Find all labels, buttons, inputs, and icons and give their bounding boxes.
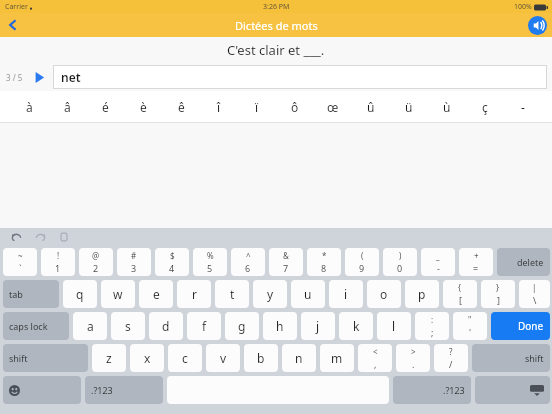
button[interactable]: Done — [491, 312, 550, 340]
button[interactable]: & — [269, 248, 303, 276]
staticText: 100% — [514, 2, 532, 12]
staticText: Done — [518, 319, 544, 333]
button[interactable]: x — [130, 344, 164, 372]
button[interactable]: net — [53, 65, 547, 89]
button[interactable]: Redo — [30, 228, 50, 246]
button[interactable]: @ — [79, 248, 113, 276]
button[interactable]: shift — [3, 344, 88, 372]
button[interactable]: tab — [3, 280, 59, 308]
staticText: q — [76, 286, 84, 302]
button[interactable]: Hide keyboard — [475, 376, 550, 404]
button[interactable]: v — [206, 344, 240, 372]
button[interactable]: t — [215, 280, 249, 308]
button[interactable]: | — [519, 280, 550, 308]
button[interactable]: œ — [314, 91, 352, 123]
staticText: % — [207, 250, 214, 261]
button[interactable]: ( — [345, 248, 379, 276]
button[interactable]: Play — [30, 68, 48, 86]
button[interactable]: ê — [162, 91, 200, 123]
button[interactable]: d — [149, 312, 183, 340]
button[interactable]: - — [504, 91, 542, 123]
staticText: * — [322, 250, 327, 261]
button[interactable]: n — [282, 344, 316, 372]
button[interactable]: ù — [428, 91, 466, 123]
staticText: - — [437, 262, 440, 274]
staticText: C'est clair et ___. — [227, 41, 325, 59]
button[interactable]: p — [405, 280, 439, 308]
button[interactable]: delete — [497, 248, 550, 276]
button[interactable]: à — [10, 91, 48, 123]
button[interactable]: k — [339, 312, 373, 340]
staticText: .?123 — [443, 384, 465, 396]
button[interactable]: ï — [238, 91, 276, 123]
button[interactable]: h — [263, 312, 297, 340]
button[interactable]: i — [329, 280, 363, 308]
button[interactable]: ü — [390, 91, 428, 123]
staticText: ] — [497, 294, 500, 306]
staticText: 2 — [93, 262, 99, 274]
button[interactable]: $ — [155, 248, 189, 276]
button[interactable]: ~ — [3, 248, 37, 276]
button[interactable]: { — [443, 280, 477, 308]
button[interactable]: î — [200, 91, 238, 123]
button[interactable]: ^ — [231, 248, 265, 276]
button[interactable]: j — [301, 312, 335, 340]
button[interactable]: Paste — [54, 228, 74, 246]
button[interactable]: q — [63, 280, 97, 308]
button[interactable]: o — [367, 280, 401, 308]
button[interactable]: e — [139, 280, 173, 308]
staticText: c — [182, 350, 188, 366]
button[interactable]: Back — [0, 13, 26, 37]
button[interactable]: < — [358, 344, 392, 372]
staticText: tab — [9, 288, 23, 300]
staticText: shift — [525, 352, 544, 364]
button[interactable]: Emoji — [3, 376, 81, 404]
button[interactable]: ? — [434, 344, 468, 372]
button[interactable]: m — [320, 344, 354, 372]
button[interactable]: % — [193, 248, 227, 276]
button[interactable]: r — [177, 280, 211, 308]
button[interactable]: # — [117, 248, 151, 276]
staticText: é — [102, 99, 109, 115]
button[interactable]: _ — [421, 248, 455, 276]
button[interactable]: shift — [472, 344, 550, 372]
button[interactable]: .?123 — [393, 376, 471, 404]
button[interactable]: ! — [41, 248, 75, 276]
button[interactable]: g — [225, 312, 259, 340]
button[interactable]: â — [48, 91, 86, 123]
button[interactable]: .?123 — [85, 376, 163, 404]
button[interactable]: Undo — [6, 228, 26, 246]
staticText: 7 — [283, 262, 289, 274]
button[interactable]: Play audio — [527, 15, 547, 35]
button[interactable]: a — [73, 312, 107, 340]
button[interactable]: f — [187, 312, 221, 340]
button[interactable]: > — [396, 344, 430, 372]
button[interactable]: " — [453, 312, 487, 340]
staticText: ; — [431, 326, 434, 338]
staticText: | — [532, 282, 537, 293]
button[interactable]: z — [92, 344, 126, 372]
staticText: t — [230, 286, 235, 302]
button[interactable]: è — [124, 91, 162, 123]
staticText: ù — [443, 99, 451, 115]
button[interactable]: w — [101, 280, 135, 308]
button[interactable]: u — [291, 280, 325, 308]
button[interactable]: l — [377, 312, 411, 340]
button[interactable]: * — [307, 248, 341, 276]
button[interactable]: c — [168, 344, 202, 372]
staticText: : — [431, 314, 434, 325]
button[interactable]: ) — [383, 248, 417, 276]
button[interactable]: + — [459, 248, 493, 276]
button[interactable]: é — [86, 91, 124, 123]
button[interactable]: s — [111, 312, 145, 340]
button[interactable]: caps lock — [3, 312, 69, 340]
staticText: ï — [255, 99, 259, 115]
button[interactable]: û — [352, 91, 390, 123]
button[interactable]: b — [244, 344, 278, 372]
button[interactable]: ç — [466, 91, 504, 123]
button[interactable]: ô — [276, 91, 314, 123]
button[interactable]: : — [415, 312, 449, 340]
button[interactable]: } — [481, 280, 515, 308]
button[interactable]: y — [253, 280, 287, 308]
